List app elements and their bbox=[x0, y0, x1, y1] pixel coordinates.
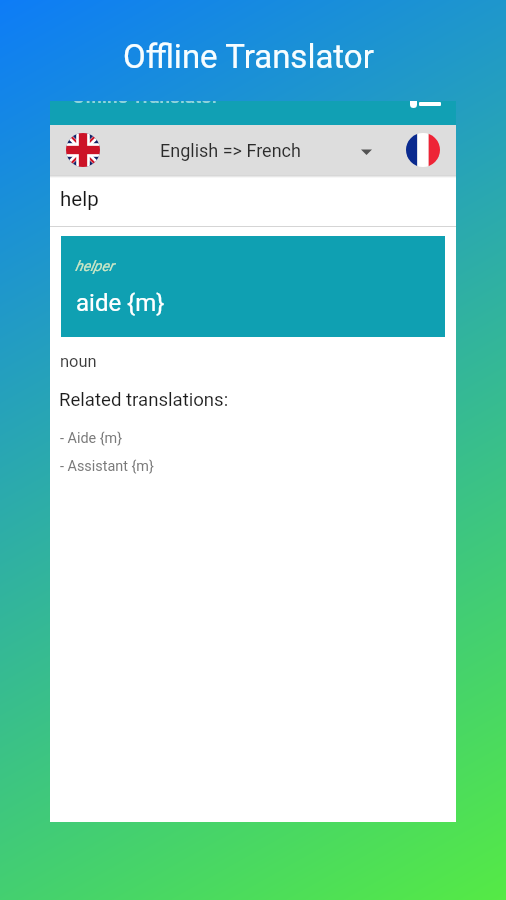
staticText: Offline Translator bbox=[123, 37, 374, 76]
staticText: help bbox=[60, 187, 99, 211]
staticText: Related translations: bbox=[59, 389, 229, 411]
staticText: English => French bbox=[160, 140, 301, 161]
button[interactable]: Menu bbox=[406, 101, 442, 107]
staticText: helper bbox=[75, 258, 114, 275]
staticText: noun bbox=[60, 352, 97, 371]
staticText: - Assistant {m} bbox=[60, 458, 154, 475]
button[interactable]: English => French bbox=[50, 125, 456, 175]
staticText: - Aide {m} bbox=[60, 430, 123, 447]
button[interactable]: helper bbox=[61, 236, 445, 337]
staticText: Offline Translator bbox=[72, 101, 219, 107]
button[interactable]: help bbox=[50, 174, 456, 224]
staticText: aide {m} bbox=[76, 289, 165, 317]
